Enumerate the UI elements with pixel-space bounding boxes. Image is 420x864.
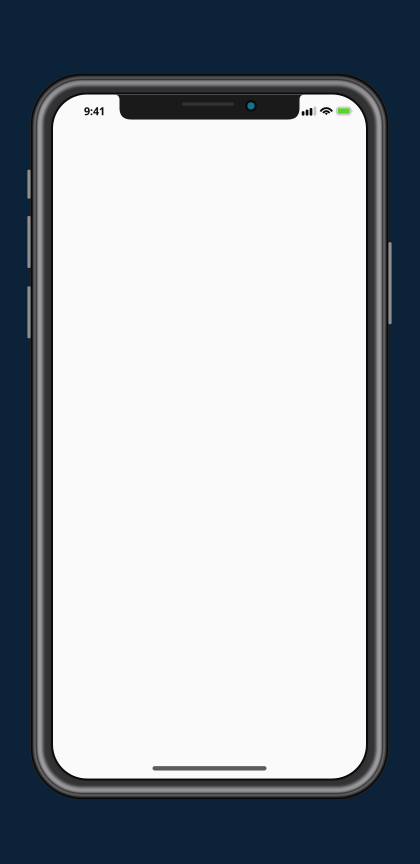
staticText: 9:41 (84, 104, 105, 118)
